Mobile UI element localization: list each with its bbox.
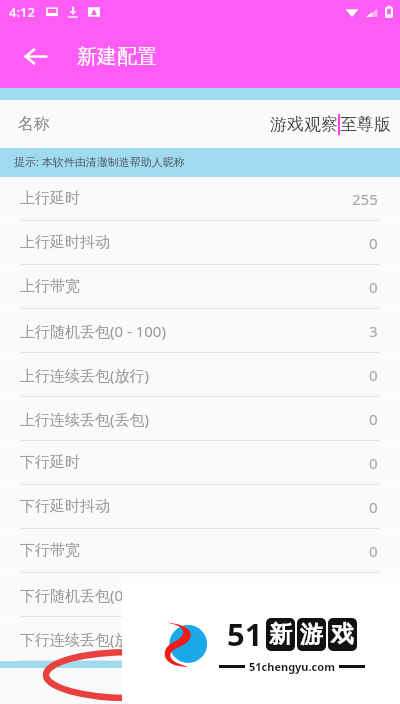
staticText: 255 bbox=[352, 189, 378, 209]
button[interactable]: 上行连续丢包(丢包) bbox=[0, 397, 400, 440]
staticText: 游 bbox=[300, 620, 323, 649]
button[interactable]: 下行连续丢包(放行) bbox=[0, 617, 400, 660]
staticText: 下行延时抖动 bbox=[20, 497, 110, 516]
staticText: 0 bbox=[369, 541, 378, 561]
button[interactable]: 下行延时抖动 bbox=[0, 485, 400, 528]
staticText: 51chengyu.com bbox=[249, 659, 335, 674]
staticText: 4:12 bbox=[9, 3, 35, 21]
staticText: 51 bbox=[227, 613, 263, 655]
staticText: 戏 bbox=[331, 620, 354, 649]
staticText: 上行连续丢包(放行) bbox=[20, 365, 150, 385]
staticText: 新 bbox=[269, 620, 292, 649]
staticText: 至尊版 bbox=[340, 114, 391, 135]
button[interactable]: 名称 bbox=[0, 100, 400, 148]
staticText: 0 bbox=[369, 365, 378, 385]
button[interactable]: 上行带宽 bbox=[0, 265, 400, 308]
button[interactable]: 下行延时 bbox=[0, 441, 400, 484]
staticText: 0 bbox=[369, 453, 378, 473]
staticText: 上行随机丢包(0 - 100) bbox=[20, 321, 166, 341]
staticText: 0 bbox=[369, 233, 378, 253]
button[interactable] bbox=[0, 668, 400, 704]
button[interactable]: 上行随机丢包(0 - 100) bbox=[0, 309, 400, 352]
button[interactable]: 上行延时 bbox=[0, 177, 400, 220]
staticText: 提示: 本软件由清澈制造帮助人昵称 bbox=[14, 154, 185, 169]
staticText: 上行延时抖动 bbox=[20, 233, 110, 252]
staticText: 0 bbox=[369, 277, 378, 297]
staticText: 下行延时 bbox=[20, 453, 80, 472]
staticText: 上行连续丢包(丢包) bbox=[20, 409, 150, 429]
button[interactable]: 下行带宽 bbox=[0, 529, 400, 572]
button[interactable]: 上行连续丢包(放行) bbox=[0, 353, 400, 396]
button[interactable]: Back bbox=[12, 33, 58, 79]
staticText: 下行带宽 bbox=[20, 541, 80, 560]
button[interactable]: 下行随机丢包(0 - 100) bbox=[0, 573, 400, 616]
staticText: 上行带宽 bbox=[20, 277, 80, 296]
staticText: 上行延时 bbox=[20, 189, 80, 208]
staticText: 下行随机丢包(0 - 100) bbox=[20, 585, 166, 605]
staticText: 新建配置 bbox=[77, 44, 157, 69]
staticText: 游戏观察 bbox=[270, 114, 338, 135]
staticText: 0 bbox=[369, 497, 378, 517]
staticText: 0 bbox=[369, 409, 378, 429]
staticText: 3 bbox=[369, 321, 378, 341]
staticText: 下行连续丢包(放行) bbox=[20, 629, 150, 649]
staticText: 名称 bbox=[18, 114, 50, 134]
button[interactable]: 上行延时抖动 bbox=[0, 221, 400, 264]
